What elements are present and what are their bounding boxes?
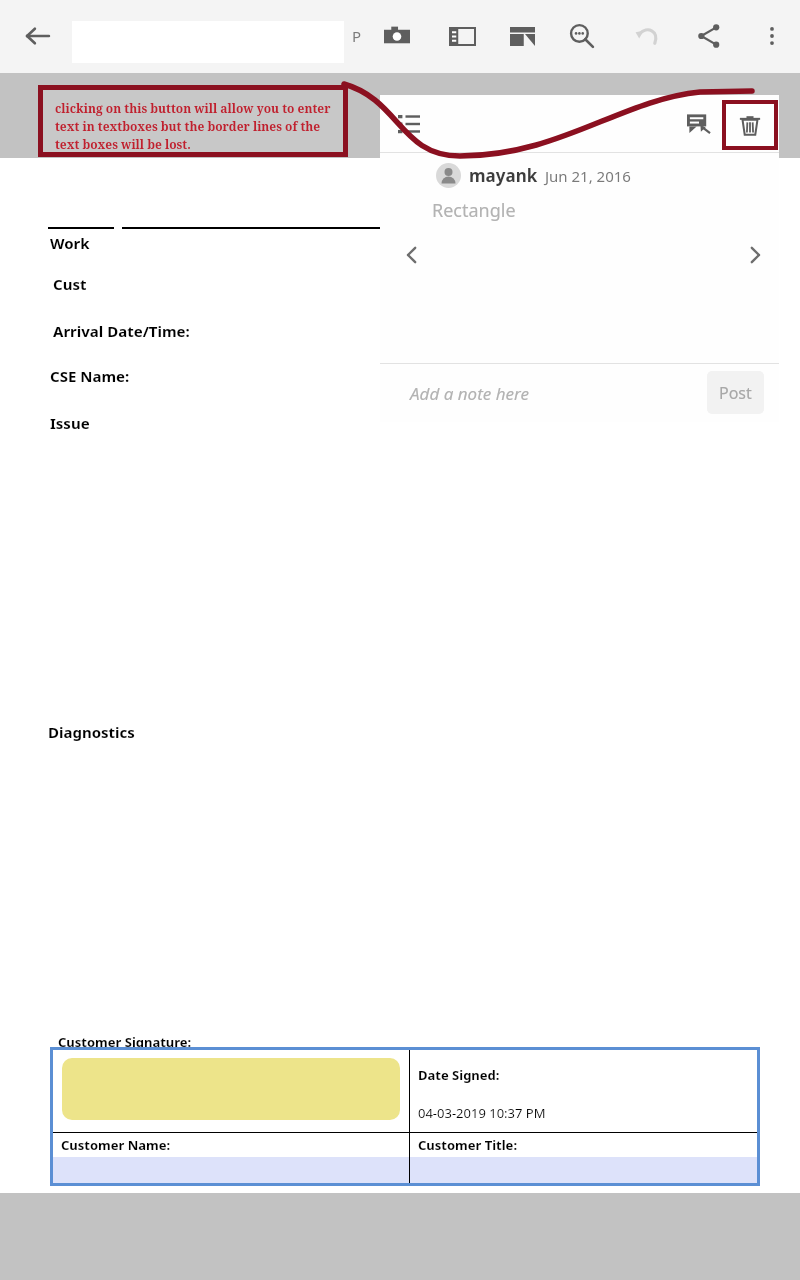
staticText: Customer Signature: xyxy=(58,1033,192,1051)
button[interactable]: More options xyxy=(750,14,794,58)
staticText: Diagnostics xyxy=(48,722,135,742)
button[interactable]: Back xyxy=(18,16,58,56)
button[interactable]: Search xyxy=(560,14,604,58)
staticText: mayank xyxy=(469,164,538,187)
staticText: 04-03-2019 10:37 PM xyxy=(418,1104,546,1122)
staticText: Work xyxy=(50,233,90,253)
staticText: Issue xyxy=(50,413,90,433)
staticText: clicking on this button will allow you t… xyxy=(55,100,335,153)
button[interactable]: Reply to note xyxy=(678,103,720,145)
staticText: Customer Name: xyxy=(61,1136,171,1154)
button[interactable]: Undo xyxy=(625,14,669,58)
button[interactable]: Share xyxy=(687,14,731,58)
button[interactable]: Next note xyxy=(735,235,775,275)
staticText: Date Signed: xyxy=(418,1066,500,1084)
button[interactable]: Layout xyxy=(440,14,484,58)
button[interactable]: Page view xyxy=(500,14,544,58)
staticText: Arrival Date/Time: xyxy=(53,321,190,341)
button[interactable]: Delete xyxy=(722,100,778,150)
staticText: Add a note here xyxy=(410,382,529,405)
staticText: P xyxy=(352,26,362,46)
staticText: Customer Title: xyxy=(418,1136,518,1154)
button[interactable]: Camera xyxy=(375,14,419,58)
staticText: Jun 21, 2016 xyxy=(545,166,631,186)
staticText: CSE Name: xyxy=(50,366,130,386)
button[interactable]: List of notes xyxy=(388,103,430,145)
button[interactable]: Add a note here xyxy=(410,372,700,414)
staticText: Post xyxy=(719,382,752,404)
staticText: Rectangle xyxy=(432,198,516,223)
staticText: Cust xyxy=(53,274,87,294)
button[interactable]: Previous note xyxy=(392,235,432,275)
button[interactable]: Post xyxy=(707,371,764,414)
button[interactable] xyxy=(62,1058,400,1120)
